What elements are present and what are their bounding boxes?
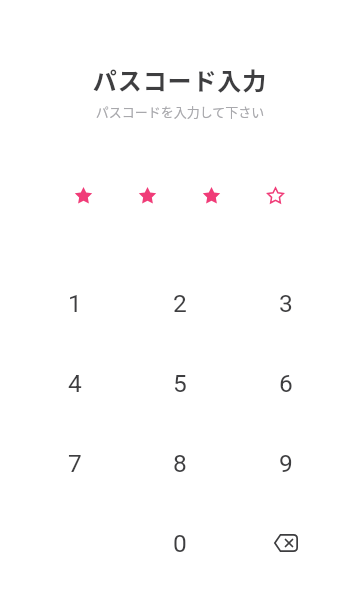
button[interactable]: 5 [128, 343, 232, 423]
staticText: 2 [173, 289, 187, 318]
other: Delete [274, 532, 298, 554]
button[interactable]: 8 [128, 423, 232, 503]
button[interactable]: Delete [234, 503, 338, 583]
button[interactable]: 0 [128, 503, 232, 583]
staticText: 5 [173, 369, 187, 398]
staticText: 0 [173, 529, 187, 558]
button[interactable]: 2 [128, 263, 232, 343]
button[interactable]: 4 [23, 343, 127, 423]
button[interactable]: 3 [234, 263, 338, 343]
staticText: 4 [68, 369, 82, 398]
button[interactable]: 1 [23, 263, 127, 343]
button[interactable]: 9 [234, 423, 338, 503]
staticText: 8 [173, 449, 187, 478]
staticText: 1 [68, 289, 82, 318]
staticText: 7 [68, 449, 82, 478]
button[interactable]: 6 [234, 343, 338, 423]
staticText: 3 [279, 289, 293, 318]
button[interactable]: 7 [23, 423, 127, 503]
staticText: 6 [279, 369, 293, 398]
staticText: パスコード入力 [0, 62, 360, 97]
staticText: 9 [279, 449, 293, 478]
staticText: パスコードを入力して下さい [0, 102, 360, 121]
